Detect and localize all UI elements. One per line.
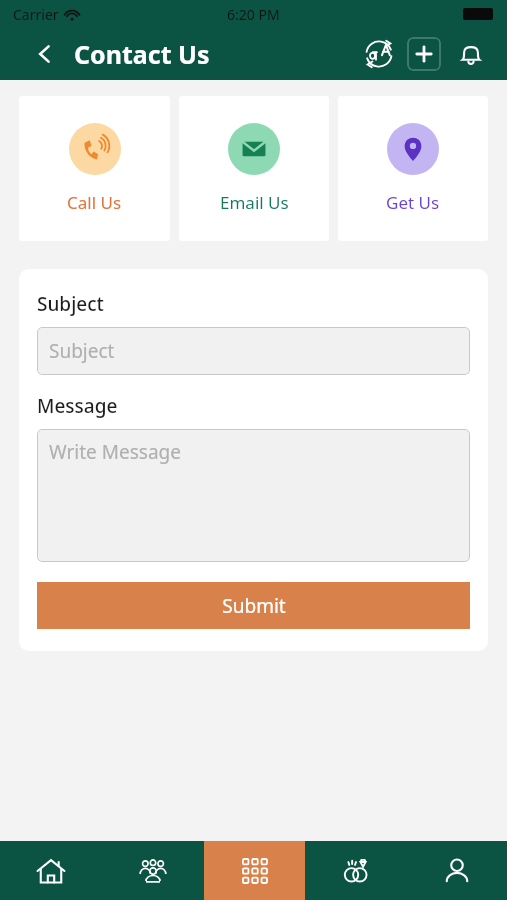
button[interactable]: Profile bbox=[406, 841, 507, 900]
button[interactable]: Add bbox=[407, 37, 441, 71]
button[interactable]: Submit bbox=[37, 582, 470, 629]
staticText: Submit bbox=[222, 593, 286, 619]
staticText: Subject bbox=[49, 338, 115, 364]
staticText: 6:20 PM bbox=[227, 5, 280, 24]
staticText: Contact Us bbox=[74, 37, 210, 71]
button[interactable]: Get Us bbox=[338, 96, 488, 241]
button[interactable]: Notifications bbox=[451, 34, 491, 74]
button[interactable]: Subject bbox=[37, 327, 470, 375]
button[interactable]: Categories bbox=[204, 841, 305, 900]
staticText: Message bbox=[37, 393, 118, 419]
button[interactable]: Weddings bbox=[305, 841, 406, 900]
staticText: Carrier bbox=[13, 5, 59, 24]
button[interactable]: Write Message bbox=[37, 429, 470, 562]
button[interactable]: Call Us bbox=[19, 96, 170, 241]
button[interactable]: Home bbox=[0, 841, 102, 900]
button[interactable]: Back bbox=[30, 39, 60, 69]
staticText: Email Us bbox=[220, 191, 289, 214]
staticText: Subject bbox=[37, 291, 104, 317]
staticText: Call Us bbox=[67, 191, 122, 214]
button[interactable]: Community bbox=[102, 841, 204, 900]
button[interactable]: Translate bbox=[359, 34, 399, 74]
staticText: Write Message bbox=[49, 439, 181, 465]
staticText: Get Us bbox=[386, 191, 440, 214]
button[interactable]: Email Us bbox=[179, 96, 329, 241]
